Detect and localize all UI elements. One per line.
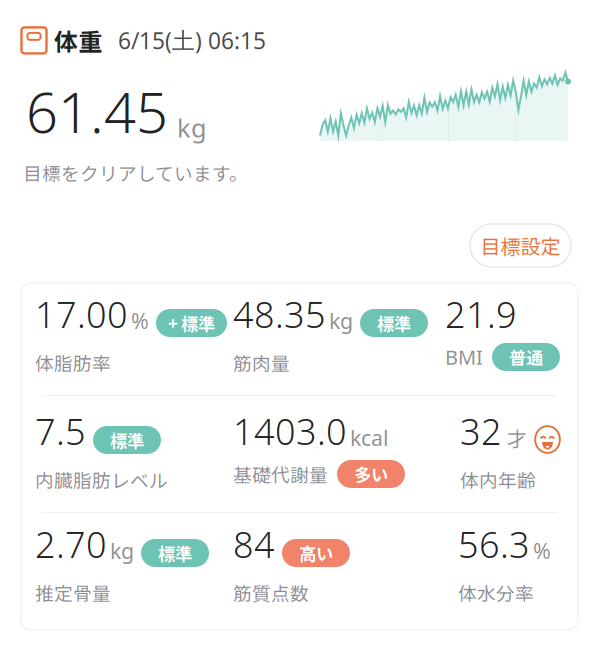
staticText: 基礎代謝量: [233, 460, 328, 487]
staticText: 1403.0: [233, 407, 347, 455]
staticText: +: [168, 311, 178, 334]
staticText: 48.35: [233, 290, 326, 338]
staticText: 標準: [377, 310, 411, 336]
staticText: 6/15(土) 06:15: [118, 25, 266, 55]
staticText: kg: [329, 307, 353, 335]
staticText: 32: [460, 407, 502, 455]
staticText: 才: [507, 423, 527, 452]
staticText: %: [533, 537, 551, 565]
staticText: 7.5: [35, 407, 86, 455]
staticText: 体重: [54, 23, 102, 58]
staticText: 84: [233, 520, 275, 568]
staticText: 推定骨量: [35, 579, 111, 606]
button[interactable]: 目標設定: [470, 224, 571, 267]
staticText: %: [131, 307, 149, 335]
staticText: kg: [177, 111, 207, 144]
staticText: 2.70: [35, 520, 107, 568]
staticText: 目標設定: [480, 231, 560, 260]
staticText: 目標をクリアしています。: [23, 159, 248, 186]
staticText: kg: [110, 537, 134, 565]
staticText: 17.00: [35, 290, 128, 338]
staticText: 体水分率: [458, 579, 534, 606]
staticText: 標準: [181, 310, 215, 336]
staticText: 内臓脂肪レベル: [35, 466, 168, 493]
staticText: 標準: [110, 427, 144, 453]
staticText: kcal: [350, 424, 389, 452]
staticText: 体脂肪率: [35, 349, 111, 376]
staticText: BMI: [445, 344, 483, 370]
staticText: 筋質点数: [233, 579, 309, 606]
staticText: 筋肉量: [233, 349, 290, 376]
staticText: 体内年齢: [460, 466, 536, 493]
staticText: 標準: [158, 540, 192, 566]
staticText: 高い: [299, 540, 333, 566]
staticText: 多い: [354, 461, 388, 487]
staticText: 21.9: [445, 290, 517, 338]
staticText: 56.3: [458, 520, 530, 568]
staticText: 61.45: [26, 74, 168, 148]
staticText: 普通: [509, 344, 543, 370]
